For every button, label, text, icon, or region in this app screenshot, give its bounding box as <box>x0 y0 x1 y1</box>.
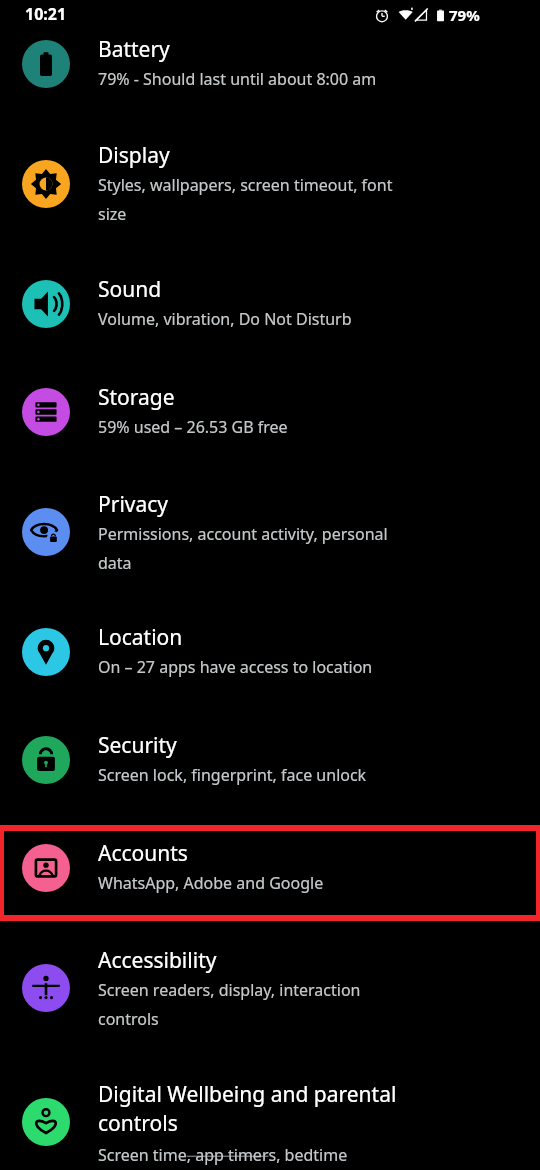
staticText: WhatsApp, Adobe and Google <box>98 872 324 894</box>
staticText: 59% used – 26.53 GB free <box>98 416 288 438</box>
staticText: 79% - Should last until about 8:00 am <box>98 68 377 90</box>
staticText: Storage <box>98 383 175 412</box>
button[interactable]: Sound <box>0 264 540 362</box>
staticText: 79% <box>449 5 480 25</box>
button[interactable]: Accounts <box>0 830 540 916</box>
button[interactable]: Digital Wellbeing and parental <box>0 1068 540 1170</box>
staticText: Accessibility <box>98 946 217 975</box>
staticText: Screen time, app timers, bedtime <box>98 1144 348 1166</box>
staticText: Digital Wellbeing and parental <box>98 1080 397 1109</box>
other: Battery <box>433 8 448 23</box>
staticText: controls <box>98 1109 178 1138</box>
staticText: Permissions, account activity, personal <box>98 523 388 545</box>
staticText: size <box>98 203 127 225</box>
other: Wi-Fi <box>398 7 414 23</box>
staticText: controls <box>98 1008 159 1030</box>
staticText: Screen readers, display, interaction <box>98 979 361 1001</box>
staticText: Privacy <box>98 490 169 519</box>
staticText: Accounts <box>98 839 188 868</box>
staticText: Battery <box>98 35 170 64</box>
other: Alarm set <box>374 7 390 23</box>
staticText: data <box>98 552 132 574</box>
button[interactable]: Battery <box>0 28 540 126</box>
button[interactable]: Security <box>0 720 540 818</box>
button[interactable]: Storage <box>0 372 540 470</box>
staticText: 10:21 <box>25 3 67 25</box>
button[interactable]: Location <box>0 612 540 710</box>
staticText: Location <box>98 623 183 652</box>
staticText: Styles, wallpapers, screen timeout, font <box>98 174 393 196</box>
other: Signal <box>414 7 430 23</box>
button[interactable]: Accessibility <box>0 934 540 1052</box>
staticText: Display <box>98 141 170 170</box>
staticText: On – 27 apps have access to location <box>98 656 373 678</box>
button[interactable]: Privacy <box>0 480 540 598</box>
staticText: Volume, vibration, Do Not Disturb <box>98 308 352 330</box>
staticText: Security <box>98 731 177 760</box>
button[interactable]: Display <box>0 134 540 252</box>
staticText: Sound <box>98 275 162 304</box>
staticText: Screen lock, fingerprint, face unlock <box>98 764 367 786</box>
